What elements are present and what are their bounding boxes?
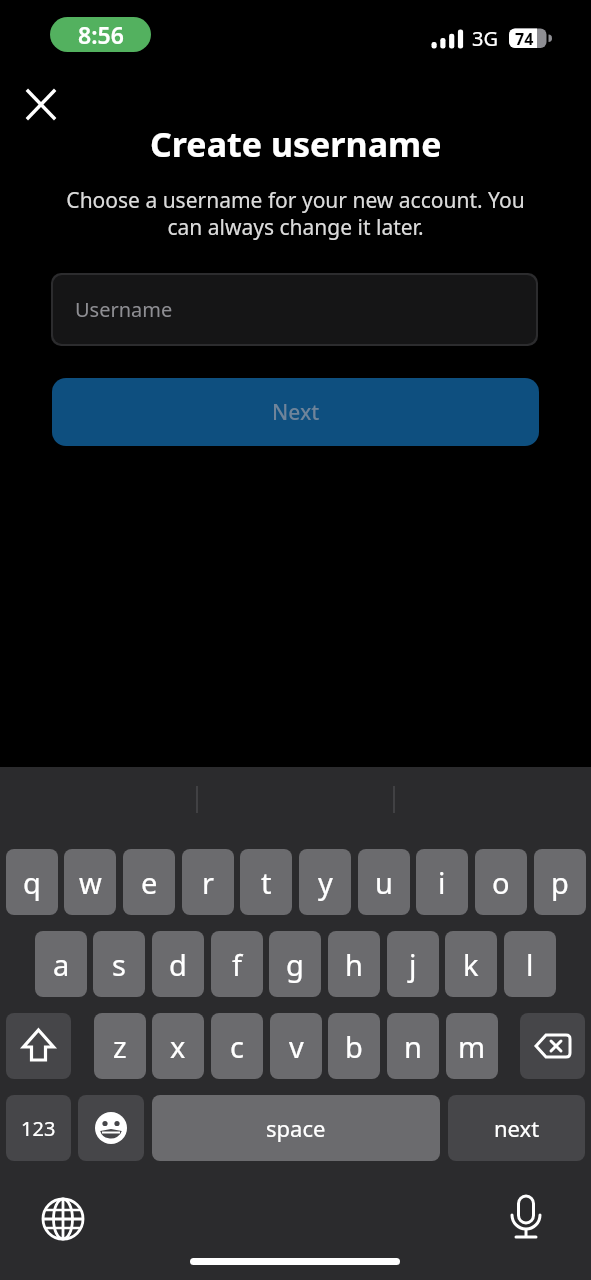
staticText: next [494,1113,540,1143]
button[interactable]: n [387,1013,439,1079]
button[interactable]: g [269,931,321,997]
staticText: Username [75,296,173,323]
button[interactable]: s [93,931,145,997]
staticText: f [232,945,242,984]
button[interactable]: space [152,1095,440,1161]
staticText: q [23,863,41,902]
button[interactable] [18,82,64,128]
staticText: i [438,863,446,902]
button[interactable] [6,1013,71,1079]
staticText: v [289,1027,304,1066]
button[interactable]: t [240,849,292,915]
staticText: 8:56 [78,19,124,50]
staticText: y [318,863,333,902]
staticText: j [409,945,417,984]
button[interactable]: w [64,849,116,915]
button[interactable]: f [211,931,263,997]
staticText: c [230,1027,244,1066]
staticText: w [79,863,102,902]
staticText: o [492,863,510,902]
button[interactable]: c [211,1013,263,1079]
button[interactable] [503,1192,549,1244]
staticText: u [375,863,393,902]
button[interactable]: z [94,1013,146,1079]
button[interactable]: b [328,1013,380,1079]
button[interactable] [38,1194,88,1244]
staticText: space [266,1113,326,1143]
staticText: 74 [515,28,534,48]
button[interactable] [520,1013,585,1079]
staticText: 123 [21,1115,56,1142]
button[interactable]: l [504,931,556,997]
staticText: a [53,945,70,984]
staticText: n [404,1027,422,1066]
button[interactable]: o [475,849,527,915]
button[interactable]: v [270,1013,322,1079]
staticText: z [113,1027,127,1066]
button[interactable]: d [152,931,204,997]
button[interactable]: p [534,849,586,915]
button[interactable]: q [6,849,58,915]
staticText: p [551,863,569,902]
staticText: r [202,863,214,902]
staticText: g [286,945,304,984]
staticText: d [169,945,187,984]
staticText: h [345,945,363,984]
staticText: Create username [150,121,442,165]
staticText: Next [272,398,320,427]
staticText: k [463,945,479,984]
button[interactable]: a [35,931,87,997]
staticText: s [112,945,126,984]
button[interactable]: j [387,931,439,997]
button[interactable]: x [152,1013,204,1079]
button[interactable]: h [328,931,380,997]
button[interactable]: Next [52,378,539,446]
staticText: b [345,1027,363,1066]
staticText: m [458,1027,486,1066]
button[interactable]: y [299,849,351,915]
button[interactable]: u [358,849,410,915]
staticText: 3G [472,25,498,52]
button[interactable]: m [446,1013,498,1079]
button[interactable]: k [445,931,497,997]
staticText: x [170,1027,186,1066]
button[interactable]: e [123,849,175,915]
button[interactable]: r [182,849,234,915]
staticText: l [526,945,534,984]
staticText: e [141,863,158,902]
staticText: Choose a username for your new account. … [66,186,525,241]
button[interactable]: 123 [6,1095,71,1161]
staticText: t [261,863,272,902]
button[interactable]: Username [53,275,536,344]
button[interactable]: i [416,849,468,915]
button[interactable]: next [448,1095,585,1161]
button[interactable] [78,1095,144,1161]
